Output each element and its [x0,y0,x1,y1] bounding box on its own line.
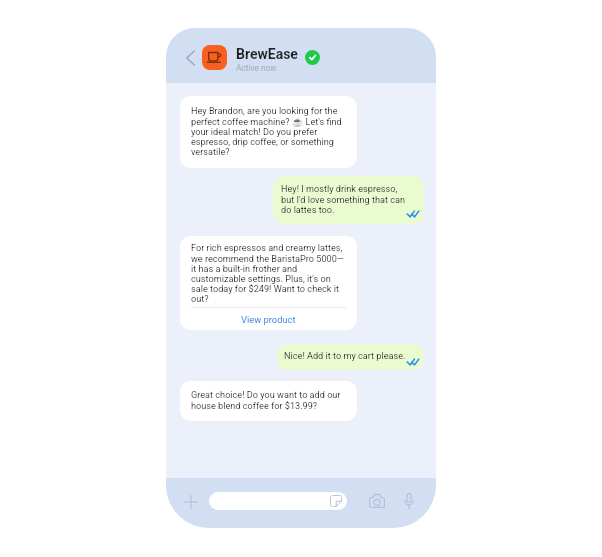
staticText: For rich espressos and creamy lattes, we… [191,243,344,304]
button[interactable]: Great choice! Do you want to add our hou… [180,381,357,421]
button[interactable]: Back [180,47,200,69]
button[interactable]: Camera [366,490,388,512]
staticText: Active now [236,63,277,73]
staticText: Hey! I mostly drink espresso, but I'd lo… [281,184,406,215]
button[interactable]: View product [191,308,346,330]
staticText: BrewEase [236,46,298,62]
staticText: Nice! Add it to my cart please. [284,351,406,362]
button[interactable]: Add attachment [180,491,202,513]
button[interactable]: Nice! Add it to my cart please. [277,344,424,370]
button[interactable]: For rich espressos and creamy lattes, we… [180,236,357,330]
button[interactable]: Hey! I mostly drink espresso, but I'd lo… [273,176,424,224]
button[interactable]: Voice message [398,490,420,512]
staticText: Hey Brandon, are you looking for the per… [191,106,342,157]
button[interactable]: Verified [305,50,320,65]
staticText: View product [241,314,296,325]
staticText: Great choice! Do you want to add our hou… [191,390,341,411]
button[interactable]: Hey Brandon, are you looking for the per… [180,96,357,168]
button[interactable]: Message input [209,492,347,510]
